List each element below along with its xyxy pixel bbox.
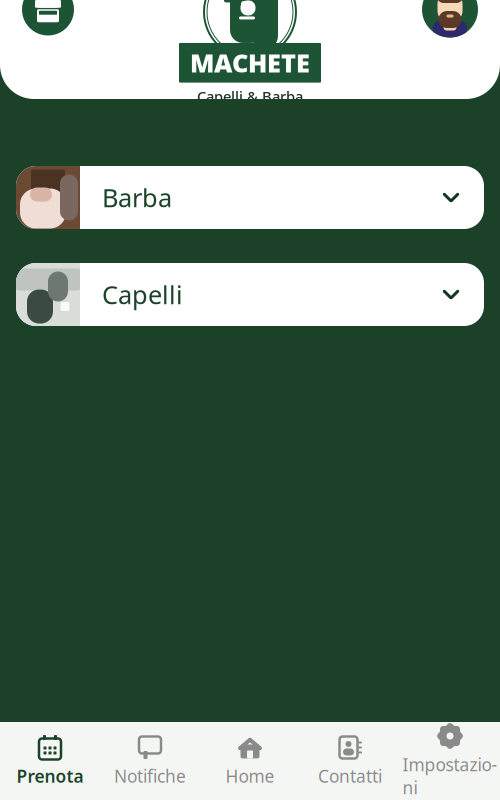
button[interactable]: Home <box>200 726 300 795</box>
staticText: Contatti <box>318 764 382 787</box>
button[interactable]: Impostazioni <box>400 715 500 800</box>
button[interactable]: Negozio <box>22 0 74 35</box>
button[interactable]: Notifiche <box>100 726 200 795</box>
staticText: Barba <box>102 181 172 214</box>
staticText: Capelli <box>102 278 183 311</box>
staticText: Prenota <box>16 764 83 787</box>
staticText: MACHETE <box>190 46 310 79</box>
staticText: Notifiche <box>114 764 186 787</box>
staticText: Impostazioni <box>402 753 497 799</box>
button[interactable]: Barba <box>16 166 484 229</box>
staticText: Capelli & Barba <box>197 87 303 106</box>
button[interactable]: Prenota <box>0 726 100 795</box>
button[interactable]: Profilo <box>422 0 478 37</box>
staticText: Home <box>225 764 274 787</box>
button[interactable]: Contatti <box>300 726 400 795</box>
button[interactable]: Capelli <box>16 263 484 326</box>
